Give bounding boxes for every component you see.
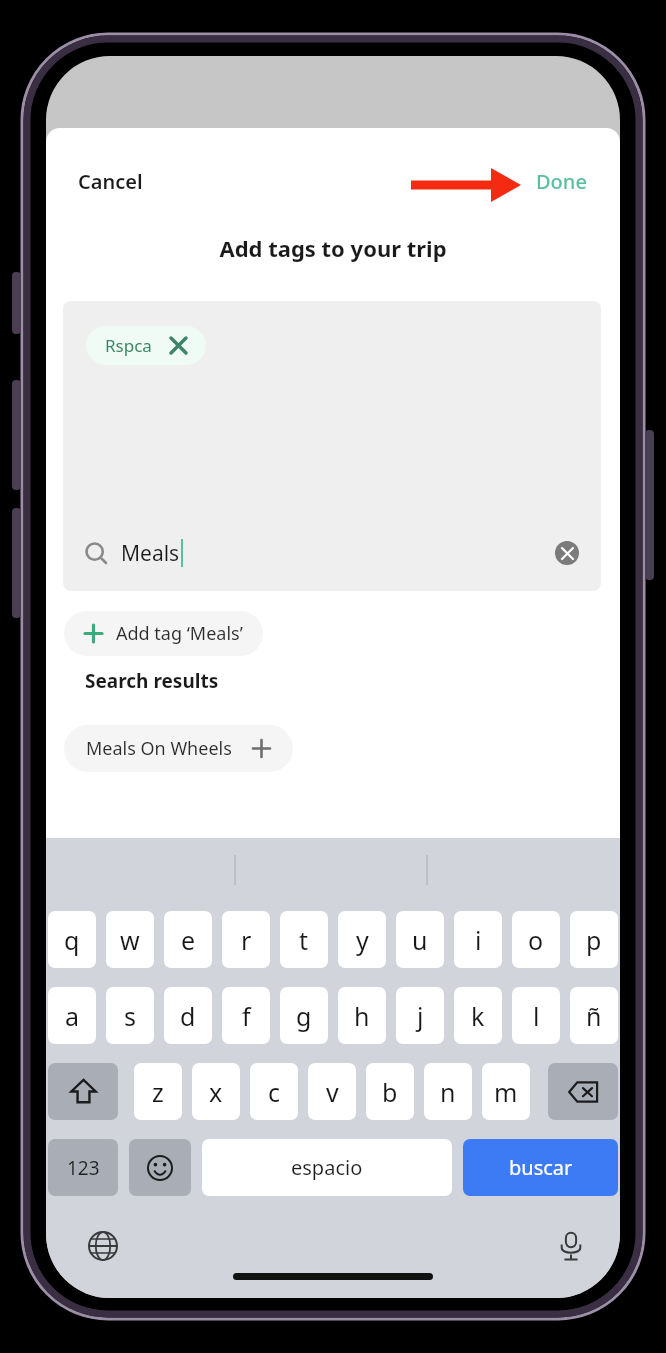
button[interactable]: u: [396, 911, 444, 968]
button[interactable]: c: [250, 1063, 298, 1120]
staticText: f: [242, 999, 251, 1033]
button[interactable]: y: [338, 911, 386, 968]
button[interactable]: z: [134, 1063, 182, 1120]
button[interactable]: Emoji: [129, 1139, 191, 1196]
button[interactable]: k: [454, 987, 502, 1044]
staticText: q: [64, 923, 80, 957]
staticText: g: [296, 999, 312, 1033]
staticText: y: [356, 923, 369, 957]
staticText: i: [475, 923, 482, 957]
staticText: t: [299, 923, 309, 957]
staticText: x: [209, 1075, 223, 1109]
button[interactable]: espacio: [202, 1139, 452, 1196]
button[interactable]: ñ: [570, 987, 618, 1044]
staticText: Search results: [85, 668, 219, 694]
button[interactable]: f: [222, 987, 270, 1044]
button[interactable]: i: [454, 911, 502, 968]
staticText: Rspca: [105, 334, 152, 357]
button[interactable]: Meals: [63, 515, 601, 591]
button[interactable]: x: [192, 1063, 240, 1120]
staticText: n: [440, 1075, 456, 1109]
button[interactable]: j: [396, 987, 444, 1044]
button[interactable]: s: [106, 987, 154, 1044]
staticText: l: [533, 999, 540, 1033]
button[interactable]: t: [280, 911, 328, 968]
button[interactable]: b: [366, 1063, 414, 1120]
button[interactable]: Shift: [48, 1063, 118, 1120]
staticText: h: [354, 999, 370, 1033]
button[interactable]: o: [512, 911, 560, 968]
button[interactable]: Backspace: [548, 1063, 618, 1120]
staticText: m: [494, 1075, 518, 1109]
staticText: p: [586, 923, 602, 957]
staticText: v: [326, 1075, 339, 1109]
button[interactable]: e: [164, 911, 212, 968]
staticText: o: [528, 923, 544, 957]
button[interactable]: l: [512, 987, 560, 1044]
button[interactable]: Cancel: [76, 164, 145, 199]
staticText: e: [181, 923, 196, 957]
staticText: Add tag ‘Meals’: [116, 621, 243, 646]
button[interactable]: g: [280, 987, 328, 1044]
button[interactable]: Change keyboard language: [84, 1227, 122, 1265]
button[interactable]: m: [482, 1063, 530, 1120]
button[interactable]: h: [338, 987, 386, 1044]
button[interactable]: p: [570, 911, 618, 968]
button[interactable]: v: [308, 1063, 356, 1120]
staticText: k: [471, 999, 485, 1033]
button[interactable]: r: [222, 911, 270, 968]
button[interactable]: Done: [534, 164, 589, 199]
button[interactable]: 123: [48, 1139, 118, 1196]
staticText: c: [268, 1075, 281, 1109]
staticText: Meals: [121, 539, 180, 568]
staticText: z: [152, 1075, 164, 1109]
staticText: 123: [67, 1155, 100, 1181]
button[interactable]: buscar: [463, 1139, 618, 1196]
staticText: a: [65, 999, 80, 1033]
staticText: s: [124, 999, 136, 1033]
button[interactable]: Add tag ‘Meals’: [64, 611, 263, 656]
staticText: ñ: [586, 999, 602, 1033]
button[interactable]: a: [48, 987, 96, 1044]
staticText: j: [417, 999, 424, 1033]
button[interactable]: Clear text: [555, 541, 579, 565]
button[interactable]: Meals On Wheels: [64, 725, 293, 772]
staticText: espacio: [291, 1154, 363, 1181]
staticText: b: [382, 1075, 398, 1109]
staticText: Add tags to your trip: [46, 233, 620, 263]
button[interactable]: Rspca: [86, 326, 206, 365]
staticText: r: [241, 923, 252, 957]
button[interactable]: Voice input: [552, 1227, 590, 1265]
button[interactable]: q: [48, 911, 96, 968]
staticText: buscar: [509, 1154, 573, 1181]
staticText: w: [120, 923, 140, 957]
button[interactable]: n: [424, 1063, 472, 1120]
button[interactable]: w: [106, 911, 154, 968]
button[interactable]: d: [164, 987, 212, 1044]
staticText: u: [412, 923, 428, 957]
staticText: d: [180, 999, 196, 1033]
staticText: Meals On Wheels: [86, 736, 232, 761]
